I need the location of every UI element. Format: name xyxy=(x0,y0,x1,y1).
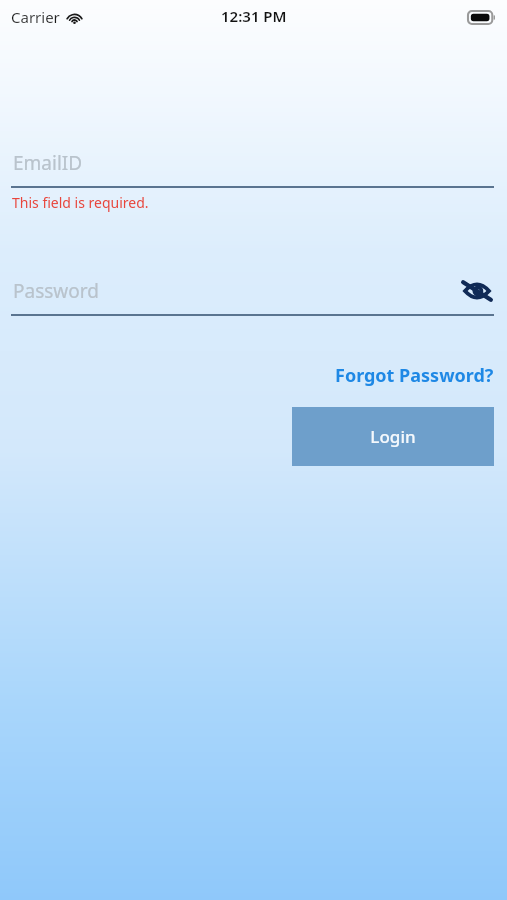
button[interactable]: Password xyxy=(0,268,507,314)
staticText: Carrier xyxy=(11,7,60,27)
staticText: EmailID xyxy=(13,150,83,176)
staticText: Login xyxy=(370,425,416,448)
button[interactable]: EmailID xyxy=(0,140,507,186)
button[interactable]: Show password xyxy=(457,271,497,311)
staticText: 12:31 PM xyxy=(221,6,287,26)
staticText: Forgot Password? xyxy=(335,363,494,388)
staticText: This field is required. xyxy=(12,193,149,212)
staticText: Password xyxy=(13,278,99,304)
button[interactable]: Forgot Password? xyxy=(335,363,494,388)
button[interactable]: Login xyxy=(292,407,494,466)
